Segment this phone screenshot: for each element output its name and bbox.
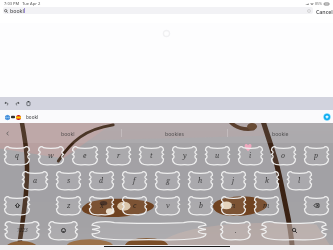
button[interactable]: m [253,196,280,215]
button[interactable]: Previous suggestions [0,123,14,143]
button[interactable]: u [204,146,231,165]
button[interactable]: Assistant [322,112,331,121]
staticText: bookl [26,114,39,120]
button[interactable]: Undo [2,99,11,108]
button[interactable]: e [71,146,99,165]
button[interactable]: r [105,146,132,165]
button[interactable]: y [171,146,198,165]
staticText: y [183,151,187,161]
button[interactable]: b [187,196,214,215]
button[interactable]: t [138,146,165,165]
button[interactable]: s [55,171,82,190]
staticText: w [48,151,54,161]
button[interactable]: f [121,171,148,190]
button[interactable]: Shift [3,196,31,215]
staticText: n [231,201,236,211]
button[interactable]: Space [85,221,213,240]
button[interactable]: h [187,171,214,190]
staticText: m [263,201,270,211]
button[interactable]: d [88,171,115,190]
button[interactable]: v [154,196,181,215]
button[interactable]: bookies [121,123,227,143]
staticText: b [199,201,203,211]
staticText: o [281,151,286,161]
staticText: bookies [165,130,184,137]
staticText: s [67,176,71,186]
staticText: . [235,226,237,236]
staticText: d [99,176,104,186]
button[interactable]: z [55,196,82,215]
staticText: k [265,176,269,186]
button[interactable]: . [219,221,252,240]
staticText: z [67,201,71,211]
staticText: u [215,151,220,161]
button[interactable]: o [270,146,297,165]
staticText: Cancel [316,8,333,15]
staticText: t [150,151,153,161]
staticText: x [100,201,104,211]
button[interactable]: k [253,171,280,190]
button[interactable]: ?123 [3,221,41,240]
staticText: r [117,151,121,161]
staticText: 7:03 PM Tue Apr 2 [4,1,41,6]
button[interactable]: w [37,146,65,165]
button[interactable]: j [220,171,247,190]
staticText: g [166,176,170,186]
staticText: ?123 [17,227,28,234]
button[interactable]: p [303,146,330,165]
button[interactable]: Emoji [47,221,79,240]
staticText: a [33,176,38,186]
button[interactable]: Clipboard [24,99,33,108]
button[interactable]: Search [258,221,330,240]
staticText: c [133,201,137,211]
staticText: l [298,176,301,186]
button[interactable]: bookl [14,123,121,143]
button[interactable]: i [237,146,264,165]
button[interactable]: c [121,196,148,215]
button[interactable]: bookl [3,7,313,14]
button[interactable]: g [154,171,181,190]
staticText: 85% [315,1,323,6]
button[interactable]: bookie [227,123,333,143]
button[interactable]: Cancel [316,8,333,15]
staticText: h [198,176,203,186]
button[interactable]: l [286,171,313,190]
staticText: e [83,151,87,161]
button[interactable]: Backspace [303,196,330,215]
staticText: bookl [61,130,75,137]
button[interactable]: a [21,171,49,190]
staticText: bookie [272,130,289,137]
staticText: f [133,176,136,186]
staticText: p [314,151,319,161]
staticText: v [166,201,170,211]
staticText: bookl [10,7,24,14]
button[interactable]: x [88,196,115,215]
button[interactable]: q [3,146,31,165]
staticText: i [249,151,252,161]
button[interactable]: n [220,196,247,215]
button[interactable]: Redo [13,99,22,108]
button[interactable]: Clear query [307,9,311,13]
staticText: q [15,151,19,161]
staticText: j [232,176,235,186]
